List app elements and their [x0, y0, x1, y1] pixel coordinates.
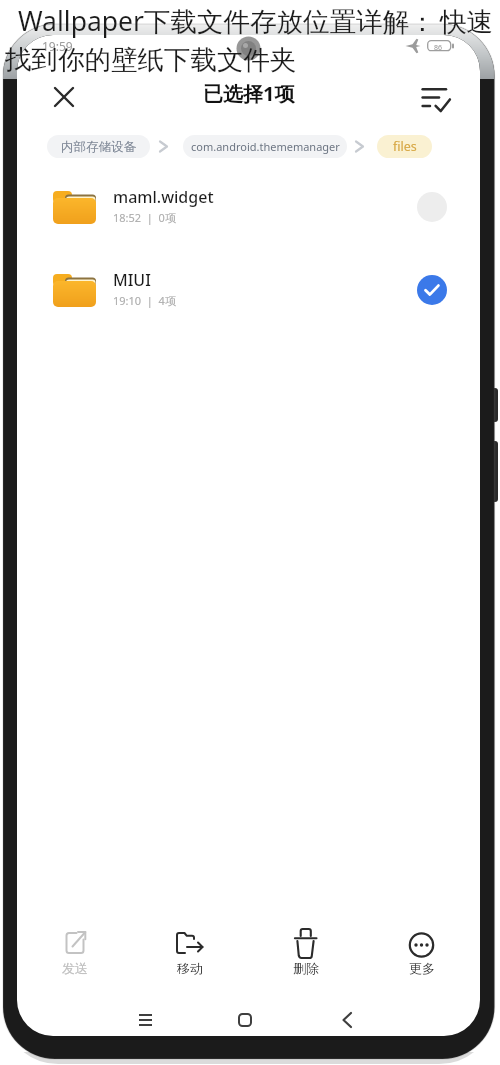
button[interactable]: com.android.thememanager — [183, 135, 347, 158]
staticText: 找到你的壁纸下载文件夹 — [5, 43, 297, 76]
button[interactable]: 移动 — [132, 924, 248, 988]
button[interactable] — [230, 1006, 260, 1034]
button[interactable]: maml.widget — [17, 166, 480, 248]
button[interactable] — [332, 1006, 362, 1034]
staticText: 更多 — [409, 960, 435, 976]
staticText: MIUI — [113, 269, 151, 291]
staticText: 发送 — [62, 960, 88, 976]
staticText: 18:52 | 0项 — [113, 210, 176, 225]
staticText: 19:10 | 4项 — [113, 293, 176, 308]
button[interactable]: 删除 — [248, 924, 364, 988]
staticText: files — [393, 138, 417, 155]
button[interactable]: files — [377, 135, 432, 158]
staticText: 删除 — [293, 960, 319, 976]
staticText: 19:59 — [42, 38, 73, 54]
staticText: Wallpaper下载文件存放位置详解： 快速 — [18, 3, 493, 39]
button[interactable] — [48, 81, 80, 113]
staticText: 内部存储设备 — [61, 139, 136, 155]
staticText: 86 — [434, 43, 443, 53]
button[interactable]: 发送 — [17, 924, 132, 988]
staticText: maml.widget — [113, 186, 214, 208]
staticText: 移动 — [177, 960, 203, 976]
button[interactable]: MIUI — [17, 249, 480, 331]
staticText: com.android.thememanager — [191, 139, 340, 154]
button[interactable]: 更多 — [364, 924, 480, 988]
button[interactable] — [130, 1006, 162, 1034]
button[interactable]: 内部存储设备 — [47, 135, 150, 158]
staticText: 已选择1项 — [203, 80, 295, 107]
button[interactable] — [414, 80, 454, 116]
